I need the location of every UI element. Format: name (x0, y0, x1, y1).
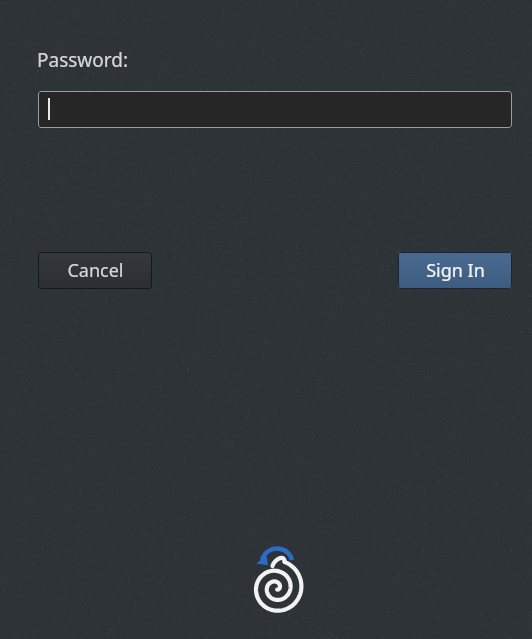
button[interactable]: Password input field (38, 91, 512, 128)
staticText: Cancel (67, 258, 124, 283)
staticText: Sign In (426, 258, 485, 283)
button[interactable]: Restart session (240, 540, 316, 624)
button[interactable]: Cancel (38, 252, 152, 289)
button[interactable]: Sign In (398, 252, 512, 289)
staticText: Password: (37, 47, 129, 73)
